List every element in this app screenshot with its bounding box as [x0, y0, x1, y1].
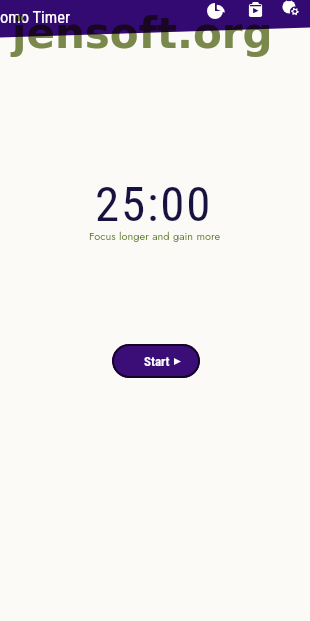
button[interactable]: Timer settings — [278, 0, 302, 19]
staticText: omo Timer — [0, 8, 71, 27]
staticText: Start — [144, 354, 170, 369]
staticText: 25:00 — [95, 176, 213, 233]
staticText: Focus longer and gain more — [89, 228, 221, 244]
button[interactable]: Statistics — [203, 0, 227, 23]
button[interactable]: Tasks — [243, 0, 267, 21]
button[interactable]: Start — [112, 344, 200, 378]
